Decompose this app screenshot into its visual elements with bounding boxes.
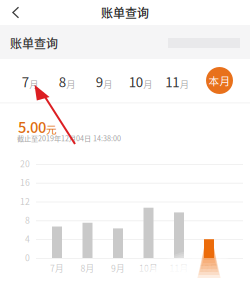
staticText: 4 <box>25 232 30 245</box>
staticText: 账单查询 <box>101 4 149 21</box>
button[interactable]: 8 <box>50 60 84 103</box>
staticText: 7月 <box>50 262 64 274</box>
staticText: 月 <box>29 77 38 91</box>
staticText: 10 <box>129 72 143 91</box>
staticText: 11月 <box>169 262 188 274</box>
staticText: 20 <box>20 157 30 170</box>
staticText: 8 <box>59 72 66 91</box>
staticText: 9月 <box>111 262 125 274</box>
button[interactable]: 10 <box>123 60 157 103</box>
staticText: 7 <box>22 72 29 91</box>
staticText: 月 <box>66 77 75 91</box>
staticText: 16 <box>20 176 30 188</box>
staticText: 9 <box>96 72 103 91</box>
staticText: 8月 <box>80 262 94 274</box>
staticText: 月 <box>143 77 152 91</box>
staticText: 12 <box>20 195 30 207</box>
staticText: 本月 <box>208 73 230 88</box>
staticText: 8 <box>25 214 30 226</box>
staticText: 元 <box>46 121 57 137</box>
staticText: 12月 <box>199 262 218 274</box>
button[interactable]: 7 <box>13 60 47 103</box>
button[interactable]: 本月 <box>206 67 233 94</box>
staticText: 月 <box>103 77 112 91</box>
staticText: 0 <box>25 251 30 264</box>
staticText: 5.00 <box>18 116 46 137</box>
staticText: 截止至2019年12月04日 14:38:00 <box>17 133 121 143</box>
staticText: 10月 <box>139 262 158 274</box>
staticText: 11 <box>165 72 179 91</box>
button[interactable]: Back <box>0 0 32 25</box>
button[interactable]: 9 <box>87 60 121 103</box>
button[interactable]: 11 <box>160 60 194 103</box>
staticText: 月 <box>180 77 189 91</box>
staticText: 账单查询 <box>10 34 58 52</box>
